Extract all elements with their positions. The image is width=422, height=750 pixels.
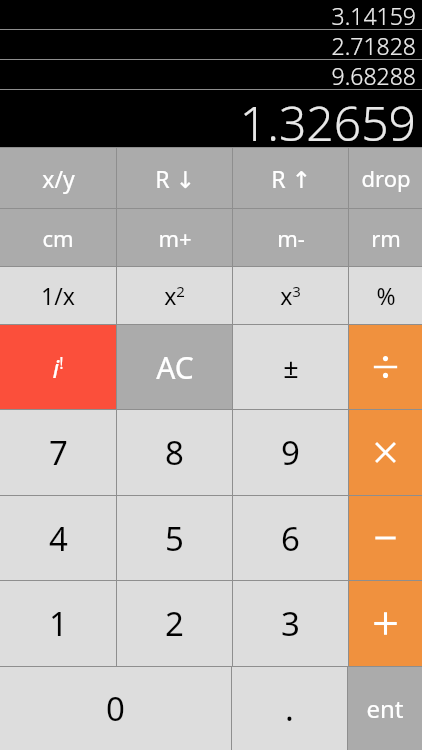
button[interactable]: R ↓ <box>117 148 232 208</box>
button[interactable]: i! <box>0 325 116 409</box>
button[interactable]: 3.14159 <box>0 0 422 29</box>
staticText: ent <box>366 692 404 725</box>
button[interactable]: ent <box>348 667 422 750</box>
button[interactable]: . <box>232 667 347 750</box>
staticText: 3 <box>281 601 300 646</box>
staticText: x3 <box>280 280 301 311</box>
staticText: x2 <box>164 280 185 311</box>
button[interactable]: 8 <box>117 410 232 495</box>
staticText: 7 <box>49 430 68 475</box>
staticText: 9 <box>281 430 300 475</box>
button[interactable]: drop <box>349 148 422 208</box>
staticText: 6 <box>281 516 300 561</box>
button[interactable]: 5 <box>117 496 232 580</box>
staticText: x/y <box>42 163 75 194</box>
button[interactable]: rm <box>349 209 422 266</box>
staticText: drop <box>361 163 411 193</box>
staticText: i! <box>52 350 64 385</box>
button[interactable]: 0 <box>0 667 231 750</box>
button[interactable]: 4 <box>0 496 116 580</box>
button[interactable]: m+ <box>117 209 232 266</box>
button[interactable]: 1.32659 <box>0 90 422 147</box>
staticText: R ↑ <box>271 163 311 194</box>
staticText: % <box>376 280 396 311</box>
staticText: 1.32659 <box>239 90 416 147</box>
button[interactable]: Multiply <box>349 410 422 495</box>
staticText: AC <box>156 347 194 388</box>
staticText: . <box>285 686 294 731</box>
button[interactable]: cm <box>0 209 116 266</box>
button[interactable]: % <box>349 267 422 324</box>
button[interactable]: Subtract <box>349 496 422 580</box>
button[interactable]: R ↑ <box>233 148 348 208</box>
staticText: 5 <box>165 516 184 561</box>
button[interactable]: Divide <box>349 325 422 409</box>
staticText: cm <box>42 223 74 253</box>
staticText: ± <box>283 349 299 386</box>
staticText: 9.68288 <box>331 60 416 89</box>
button[interactable]: 2 <box>117 581 232 666</box>
button[interactable]: 9.68288 <box>0 60 422 89</box>
button[interactable]: 7 <box>0 410 116 495</box>
button[interactable]: AC <box>117 325 232 409</box>
staticText: m+ <box>158 223 192 253</box>
button[interactable]: 1 <box>0 581 116 666</box>
staticText: 8 <box>165 430 184 475</box>
button[interactable]: Add <box>349 581 422 666</box>
button[interactable]: x3 <box>233 267 348 324</box>
button[interactable]: 2.71828 <box>0 30 422 59</box>
staticText: m- <box>277 223 305 253</box>
button[interactable]: 9 <box>233 410 348 495</box>
button[interactable]: 1/x <box>0 267 116 324</box>
button[interactable]: ± <box>233 325 348 409</box>
staticText: 0 <box>106 686 125 731</box>
staticText: 1/x <box>41 280 75 311</box>
staticText: rm <box>371 223 401 253</box>
button[interactable]: x/y <box>0 148 116 208</box>
button[interactable]: 3 <box>233 581 348 666</box>
staticText: 2.71828 <box>331 30 416 59</box>
staticText: 2 <box>165 601 184 646</box>
staticText: 4 <box>49 516 68 561</box>
button[interactable]: 6 <box>233 496 348 580</box>
staticText: R ↓ <box>155 163 195 194</box>
staticText: 3.14159 <box>331 0 416 29</box>
button[interactable]: x2 <box>117 267 232 324</box>
staticText: 1 <box>49 601 68 646</box>
button[interactable]: m- <box>233 209 348 266</box>
